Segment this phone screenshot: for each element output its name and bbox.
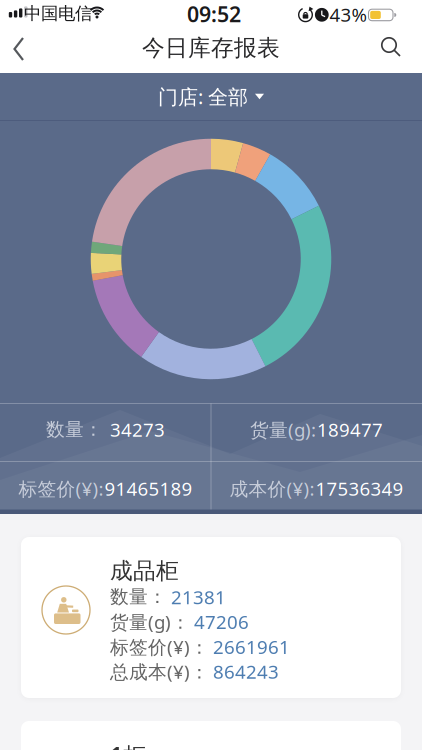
staticText: 标签价(¥): (18, 476, 103, 501)
staticText: 今日库存报表 (142, 34, 280, 62)
staticText: 09:52 (187, 0, 241, 28)
staticText: 189477 (317, 417, 383, 442)
staticText: 数量： (110, 585, 167, 608)
staticText: 2661961 (213, 634, 290, 659)
staticText: 43% (329, 2, 367, 27)
staticText: 门店: 全部 (158, 83, 248, 110)
button[interactable]: 门店: 全部 (0, 73, 422, 120)
button[interactable]: Search (376, 32, 406, 62)
staticText: 总成本(¥)： (110, 659, 209, 684)
staticText: 标签价(¥)： (110, 634, 209, 659)
staticText: 1柜 (110, 740, 146, 750)
button[interactable]: 1柜 (21, 721, 401, 750)
staticText: 数量： (46, 418, 109, 441)
staticText: 21381 (171, 584, 226, 609)
staticText: 47206 (194, 609, 249, 634)
staticText: 91465189 (104, 476, 192, 501)
staticText: 864243 (213, 659, 279, 684)
staticText: 货量(g)： (110, 609, 190, 634)
staticText: 17536349 (315, 476, 403, 501)
button[interactable]: 成品柜 (21, 537, 401, 698)
button[interactable]: Back (2, 34, 32, 64)
staticText: 成本价(¥): (229, 476, 314, 501)
staticText: 34273 (110, 417, 165, 442)
staticText: 中国电信 (24, 3, 92, 24)
staticText: 成品柜 (110, 557, 179, 585)
staticText: 货量(g): (250, 417, 316, 442)
